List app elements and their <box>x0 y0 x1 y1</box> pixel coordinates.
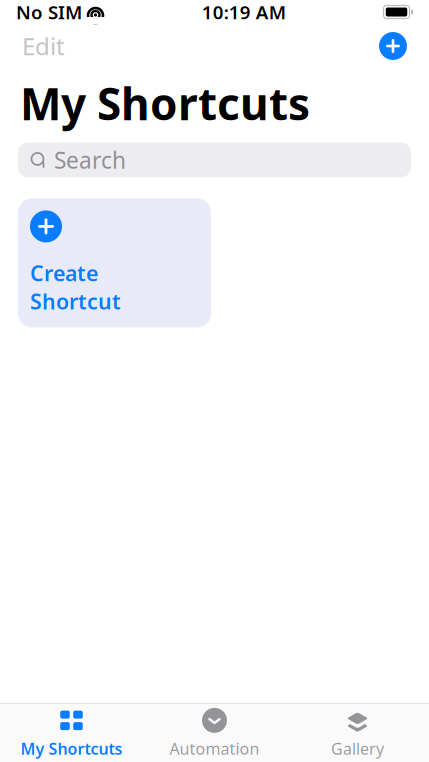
button[interactable]: Create Shortcut <box>18 198 211 327</box>
button[interactable]: Gallery <box>286 704 429 762</box>
staticText: Create Shortcut <box>30 259 121 315</box>
staticText: Gallery <box>331 738 384 759</box>
button[interactable]: Search <box>18 142 411 177</box>
staticText: My Shortcuts <box>20 74 310 132</box>
staticText: No SIM <box>16 0 82 24</box>
button[interactable]: Edit <box>18 28 69 64</box>
staticText: Edit <box>22 30 65 62</box>
button[interactable]: My Shortcuts <box>0 704 143 762</box>
button[interactable]: Automation <box>143 704 286 762</box>
staticText: Automation <box>169 738 259 759</box>
staticText: Search <box>54 145 126 175</box>
staticText: My Shortcuts <box>20 738 122 759</box>
button[interactable]: Create Shortcut <box>375 28 411 64</box>
staticText: 10:19 AM <box>202 0 286 24</box>
